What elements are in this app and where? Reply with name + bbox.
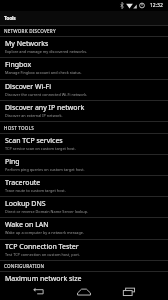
staticText: Discover Wi-Fi — [5, 82, 51, 92]
button[interactable]: Traceroute — [0, 175, 168, 196]
staticText: Fingbox — [5, 60, 32, 70]
staticText: My Networks — [5, 39, 49, 49]
staticText: Perform ping queries on custom target ho… — [5, 167, 85, 172]
button[interactable]: Back — [20, 283, 56, 300]
staticText: TCP service scan on custom target host. — [5, 146, 76, 151]
button[interactable]: Fingbox — [0, 57, 168, 79]
staticText: Explore and manage my discovered network… — [5, 49, 88, 54]
button[interactable]: TCP Connection Tester — [0, 239, 168, 260]
staticText: Discover any IP network — [5, 103, 85, 113]
button[interactable]: Home — [66, 283, 102, 300]
button[interactable]: Scan TCP services — [0, 133, 168, 154]
button[interactable]: Discover any IP network — [0, 100, 168, 121]
staticText: Wake up a computer by a network message. — [5, 230, 84, 235]
button[interactable]: Lookup DNS — [0, 196, 168, 217]
staticText: Lookup DNS — [5, 199, 46, 209]
button[interactable]: My Networks — [0, 36, 168, 57]
staticText: Discover an external IP network. — [5, 113, 63, 118]
staticText: 12:32 — [150, 2, 163, 9]
staticText: Manage Fingbox account and check status. — [5, 70, 82, 75]
staticText: Wake on LAN — [5, 220, 49, 230]
staticText: TCP Connection Tester — [5, 242, 79, 252]
staticText: NETWORK DISCOVERY — [4, 28, 56, 34]
staticText: Ping — [5, 157, 20, 167]
staticText: Tools — [4, 15, 16, 22]
staticText: HOST TOOLS — [4, 125, 35, 131]
staticText: CONFIGURATION — [4, 263, 45, 269]
staticText: Test TCP connection on custom host, port… — [5, 252, 80, 257]
staticText: Scan TCP services — [5, 136, 63, 146]
staticText: Traceroute — [5, 178, 41, 188]
staticText: Maximum network size — [5, 274, 82, 283]
staticText: Direct or reverse Domain Name Server loo… — [5, 209, 89, 214]
button[interactable]: Discover Wi-Fi — [0, 79, 168, 100]
button[interactable]: Wake on LAN — [0, 217, 168, 239]
button[interactable]: Maximum network size — [0, 271, 168, 283]
staticText: Trace route to custom target host. — [5, 188, 66, 193]
button[interactable]: Ping — [0, 154, 168, 175]
button[interactable]: Recent apps — [111, 283, 147, 300]
staticText: Discover the current connected Wi-Fi net… — [5, 92, 88, 97]
